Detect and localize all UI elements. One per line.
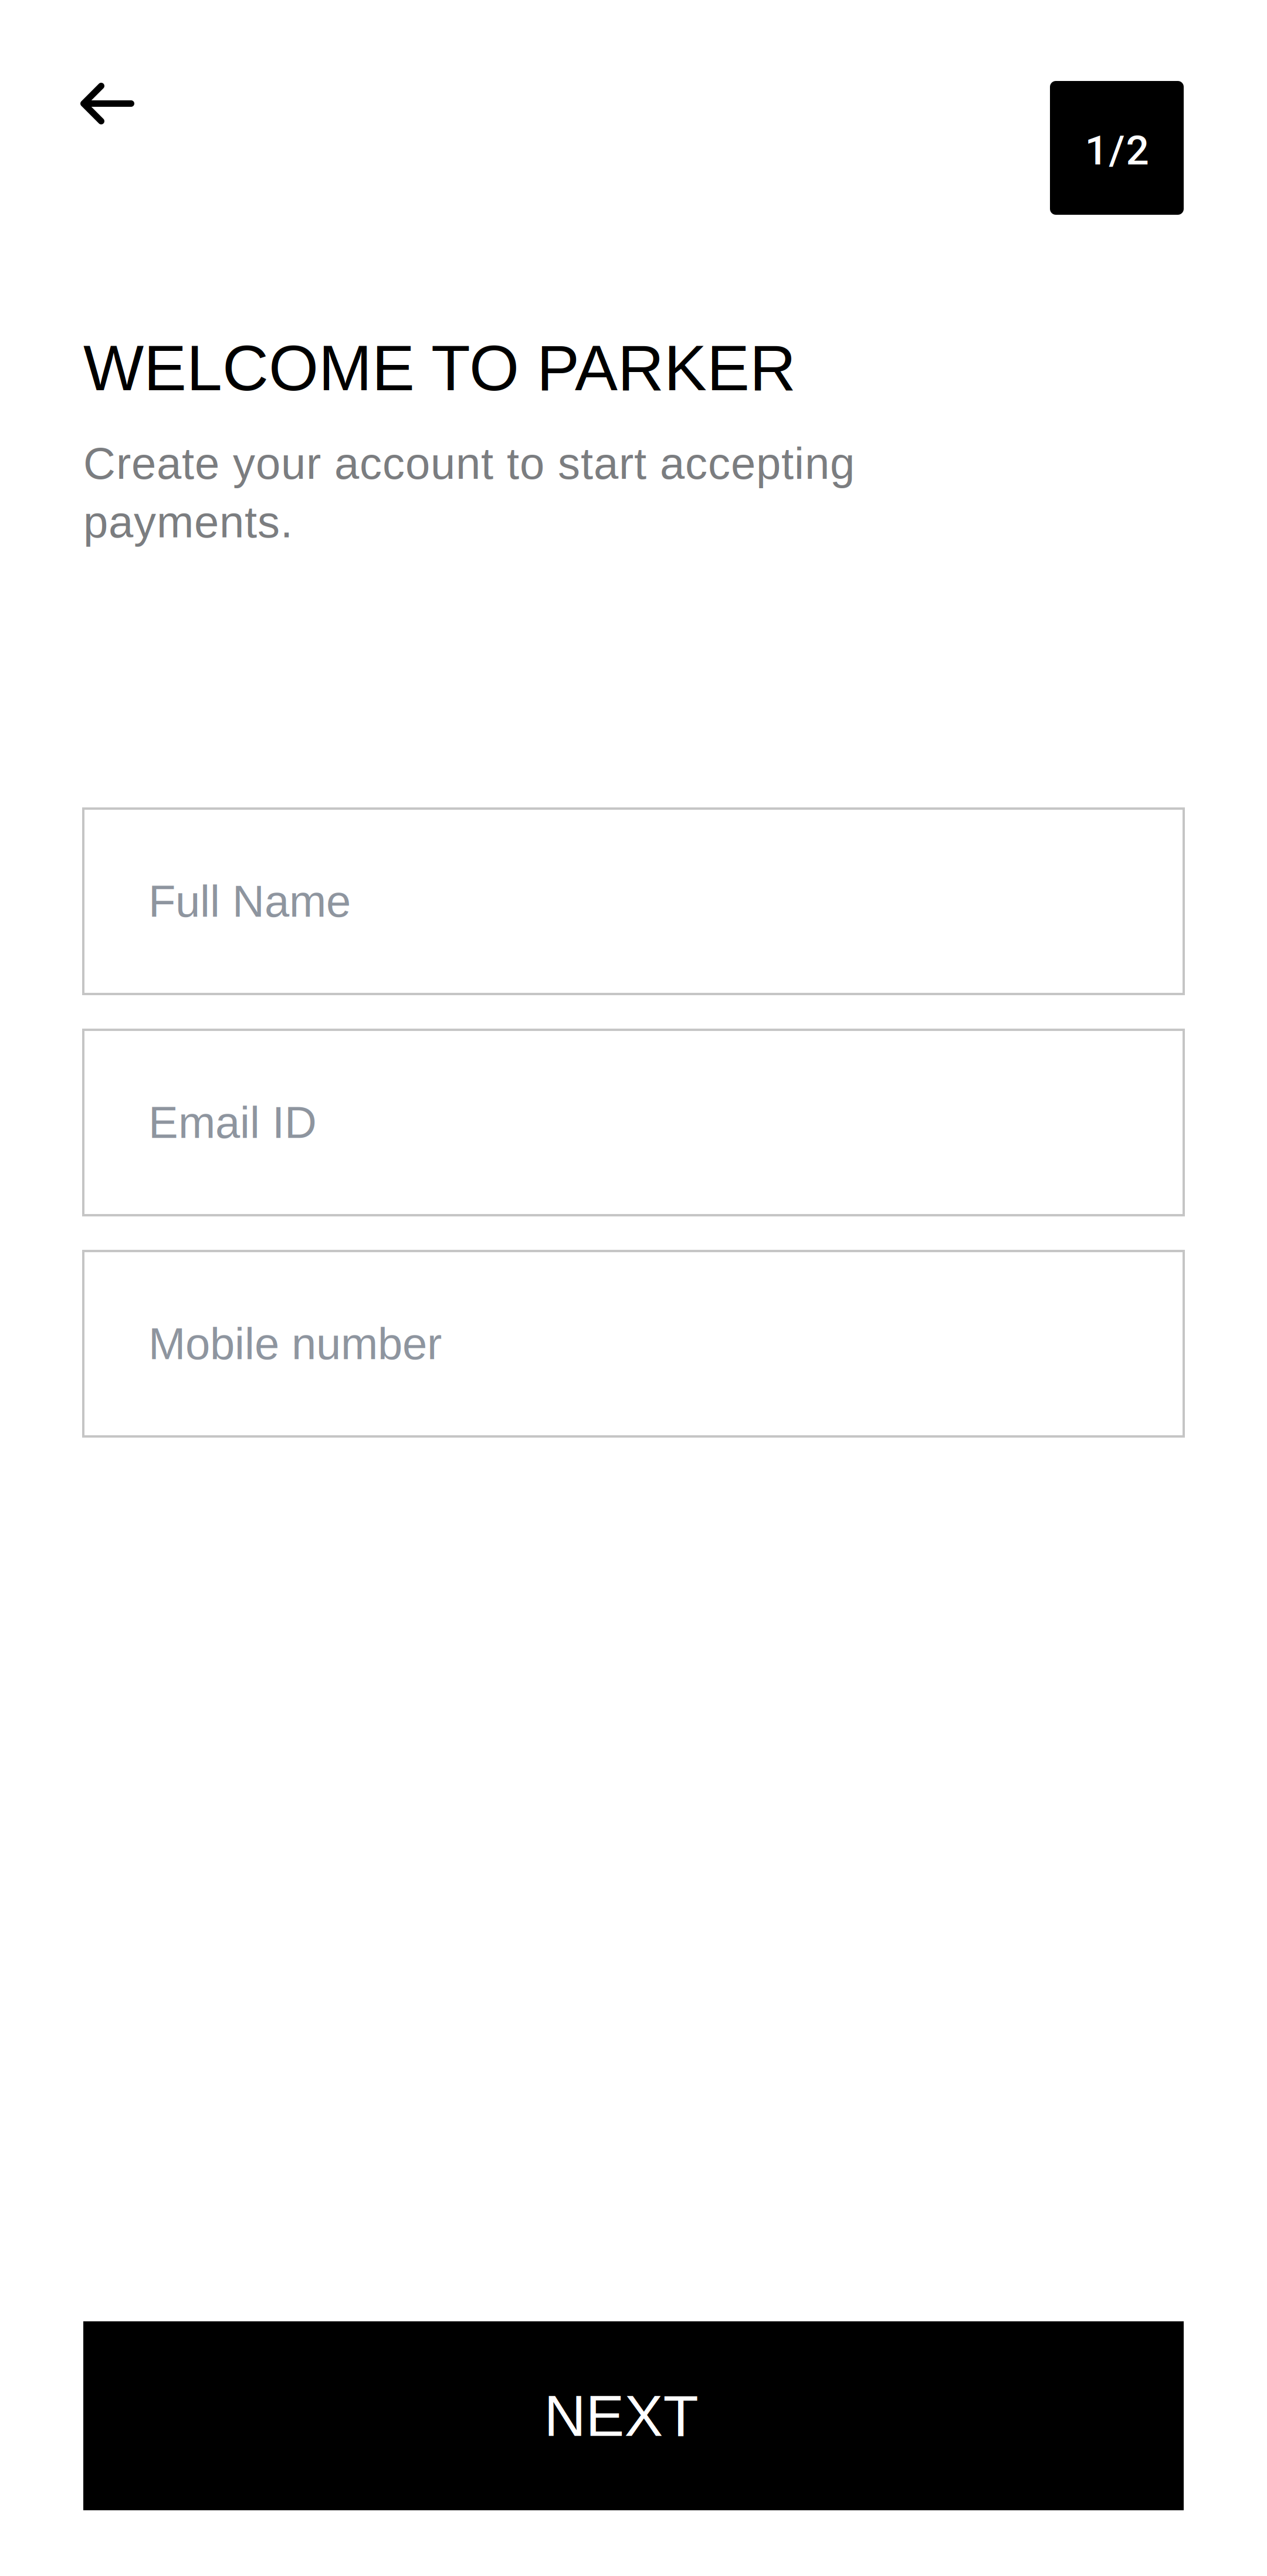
button[interactable]: Back	[83, 81, 171, 215]
staticText: Mobile number	[148, 1319, 442, 1369]
staticText: NEXT	[544, 2383, 698, 2448]
staticText: Email ID	[148, 1098, 317, 1147]
staticText: WELCOME TO PARKER	[83, 332, 796, 404]
button[interactable]: NEXT	[83, 2321, 1184, 2510]
button[interactable]: Full Name	[83, 809, 1184, 994]
staticText: Create your account to start accepting p…	[83, 438, 855, 547]
button[interactable]: Email ID	[83, 1030, 1184, 1215]
staticText: Full Name	[148, 876, 351, 926]
button[interactable]: Mobile number	[83, 1251, 1184, 1436]
button[interactable]: 1/2	[1050, 81, 1184, 215]
staticText: 1/2	[1085, 127, 1149, 174]
